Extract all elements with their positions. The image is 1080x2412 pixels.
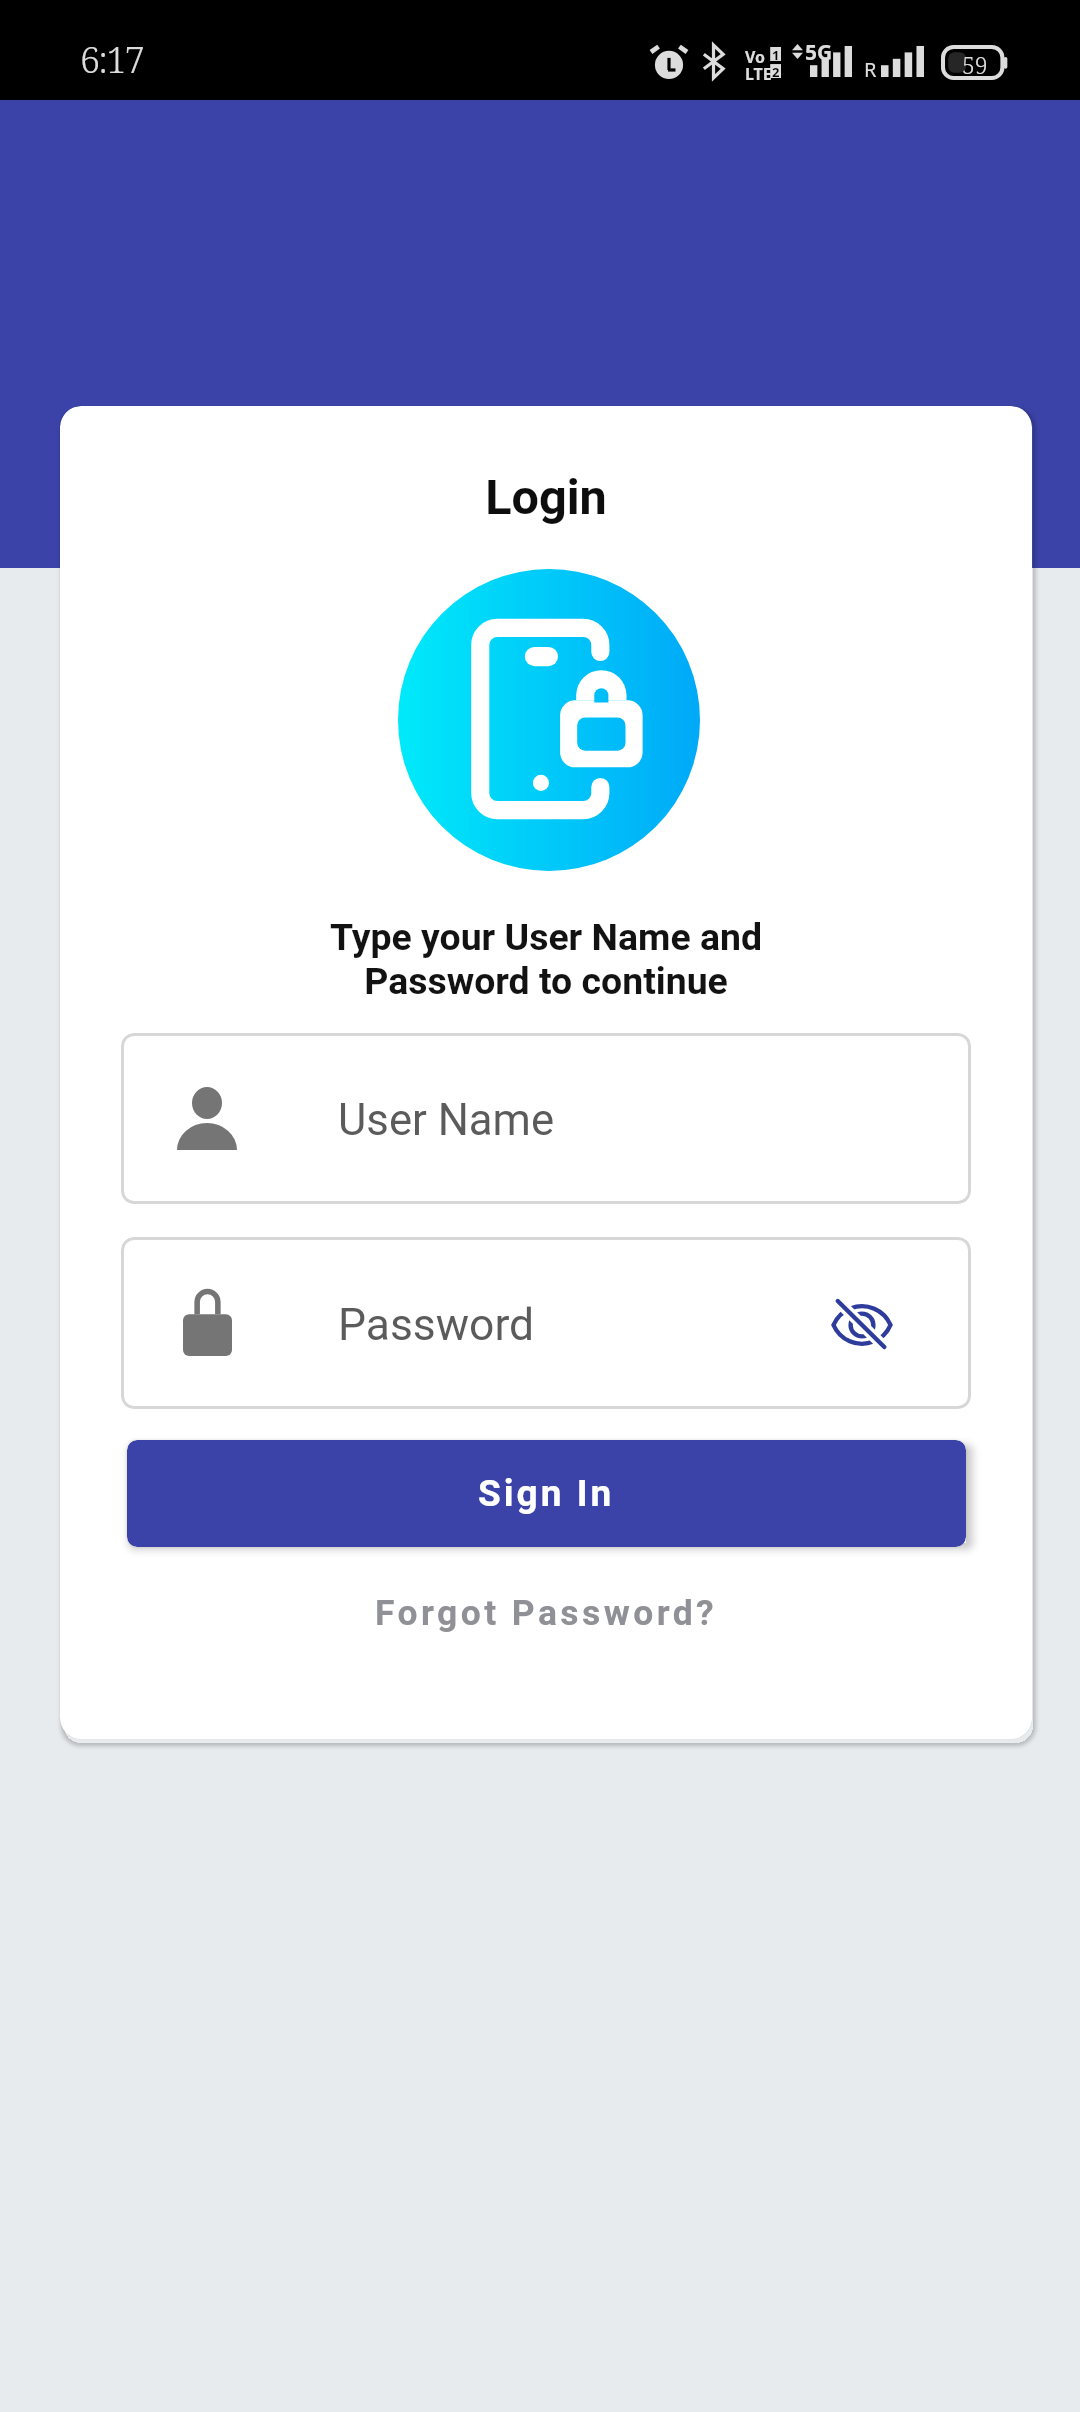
staticText: Sign In [478,1472,615,1515]
staticText: Forgot Password? [375,1592,718,1634]
staticText: 6:17 [80,35,144,84]
staticText: Type your User Name and Password to cont… [60,915,1032,1003]
staticText: Password [338,1299,535,1351]
button[interactable]: User Name [121,1033,971,1204]
staticText: 59 [962,49,988,80]
staticText: 5G [805,38,833,67]
staticText: Login [60,469,1032,526]
staticText: User Name [338,1094,555,1145]
staticText: Vo [745,46,766,68]
staticText: R [864,56,877,83]
button[interactable]: Sign In [127,1440,966,1547]
staticText: 2 [772,63,780,81]
staticText: 1 [772,46,780,64]
button[interactable]: Show password [820,1283,904,1367]
button[interactable]: Forgot Password? [60,1577,1032,1649]
button[interactable]: Password [121,1237,971,1409]
staticText: LTE [745,63,772,85]
